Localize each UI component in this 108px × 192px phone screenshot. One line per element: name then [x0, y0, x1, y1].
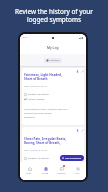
staticText: May 5, 2023 at 7:40 AM	[24, 85, 47, 88]
button[interactable]: Home	[21, 162, 37, 174]
button[interactable]: Edit	[80, 69, 84, 74]
button[interactable]: Copy	[22, 127, 84, 162]
staticText: My Log	[47, 45, 59, 49]
staticText: Messages	[57, 172, 66, 174]
button[interactable]: Messages	[53, 162, 69, 174]
staticText: May 3, 2023 at 5:14 PM	[24, 149, 47, 152]
button[interactable]: Edit	[80, 128, 84, 133]
staticText: Duration: 20 minutes	[28, 93, 49, 96]
staticText: Chest Pain, Irregular Beats, Racing, Sho…	[24, 137, 67, 145]
button[interactable]: Symptoms	[44, 58, 62, 63]
button[interactable]: Copy	[22, 68, 84, 125]
staticText: Faintness, Light Headed, Short of Breath	[24, 73, 62, 81]
staticText: 9:41	[23, 36, 28, 39]
staticText: My Log	[42, 172, 49, 174]
staticText: Symptoms	[50, 59, 60, 62]
staticText: Log Symptoms	[65, 157, 82, 160]
staticText: While walking my dog, I started to feel …	[24, 108, 68, 119]
button[interactable]: Log Symptoms	[60, 155, 84, 161]
button[interactable]: Copy	[75, 128, 80, 133]
staticText: Activity: Working	[28, 98, 45, 101]
button[interactable]: Tools	[69, 162, 85, 174]
staticText: Home	[26, 172, 32, 174]
staticText: Duration: 15 minutes	[28, 157, 49, 160]
staticText: Review the history of your logged sympto…	[0, 7, 108, 24]
button[interactable]: Copy	[75, 69, 80, 74]
staticText: Tools	[75, 172, 80, 174]
button[interactable]: My Log	[37, 162, 53, 174]
